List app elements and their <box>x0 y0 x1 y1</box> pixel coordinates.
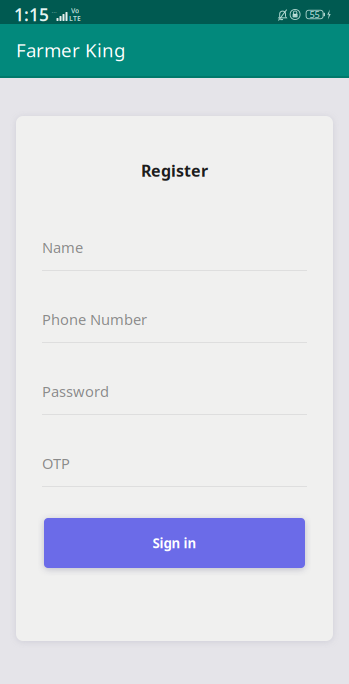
staticText: Register <box>141 160 208 181</box>
staticText: Password <box>42 381 109 401</box>
button[interactable]: Name <box>42 199 307 271</box>
button[interactable]: Sign in <box>44 518 305 568</box>
staticText: Phone Number <box>42 309 147 329</box>
button[interactable]: Phone Number <box>42 271 307 343</box>
staticText: OTP <box>42 453 70 473</box>
staticText: LTE <box>69 14 81 23</box>
staticText: 1:15 <box>14 3 49 26</box>
staticText: 55 <box>310 8 320 21</box>
staticText: Name <box>42 237 83 257</box>
staticText: Farmer King <box>16 38 125 62</box>
staticText: Sign in <box>152 534 196 552</box>
staticText: 4G <box>51 6 59 15</box>
button[interactable]: OTP <box>42 415 307 487</box>
button[interactable]: Password <box>42 343 307 415</box>
staticText: Vo <box>71 6 79 15</box>
